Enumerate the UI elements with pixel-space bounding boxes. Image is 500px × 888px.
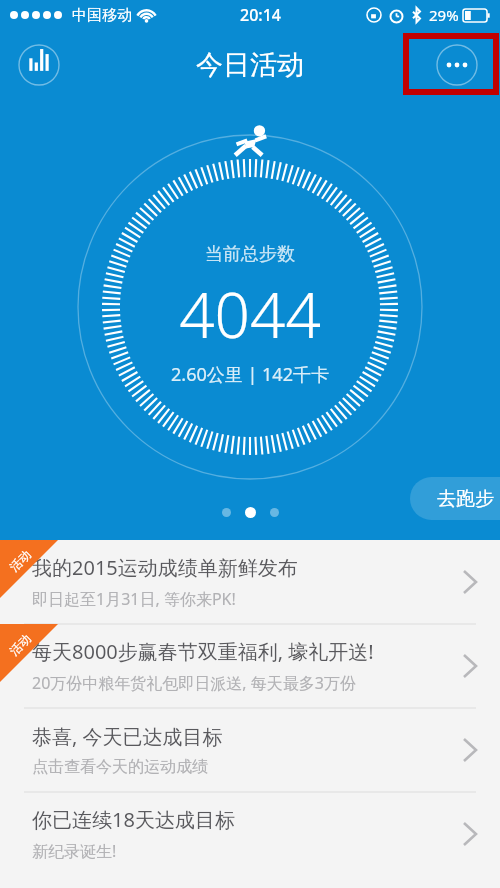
staticText: 活动: [6, 631, 34, 658]
staticText: 当前总步数: [205, 243, 295, 266]
staticText: 每天8000步赢春节双重福利, 壕礼开送!: [32, 638, 374, 665]
staticText: 新纪录诞生!: [32, 840, 117, 862]
staticText: 活动: [6, 547, 34, 574]
staticText: 我的2015运动成绩单新鲜发布: [32, 554, 298, 581]
staticText: 4044: [179, 272, 321, 356]
staticText: 你已连续18天达成目标: [32, 806, 235, 833]
button[interactable]: 每天8000步赢春节双重福利, 壕礼开送!: [0, 624, 500, 708]
staticText: 中国移动: [72, 6, 132, 25]
staticText: 今日活动: [196, 48, 304, 82]
staticText: 29%: [429, 5, 459, 25]
button[interactable]: Statistics: [18, 44, 60, 86]
staticText: 点击查看今天的运动成绩: [32, 757, 208, 777]
staticText: 恭喜, 今天已达成目标: [32, 723, 223, 750]
button[interactable]: 我的2015运动成绩单新鲜发布: [0, 540, 500, 624]
staticText: 20万份中粮年货礼包即日派送, 每天最多3万份: [32, 672, 356, 694]
button[interactable]: More options: [436, 44, 478, 86]
button[interactable]: 恭喜, 今天已达成目标: [0, 708, 500, 792]
staticText: 即日起至1月31日, 等你来PK!: [32, 588, 236, 610]
staticText: 2.60公里 | 142千卡: [171, 362, 329, 387]
staticText: 20:14: [240, 4, 281, 26]
button[interactable]: 你已连续18天达成目标: [0, 792, 500, 876]
staticText: 去跑步: [437, 487, 494, 511]
button[interactable]: 去跑步: [410, 477, 500, 520]
